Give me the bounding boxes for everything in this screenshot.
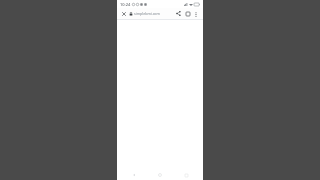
button[interactable]: Close [120, 10, 128, 18]
button[interactable]: Share [174, 9, 183, 18]
button[interactable]: Switch tabs [183, 9, 192, 18]
staticText: simplebmi.com [134, 11, 160, 16]
staticText: 10:24 [120, 2, 131, 7]
button[interactable]: More options [192, 10, 200, 18]
button[interactable]: simplebmi.com [129, 8, 173, 19]
button[interactable]: Home [151, 170, 169, 180]
button[interactable]: Back [125, 170, 143, 180]
